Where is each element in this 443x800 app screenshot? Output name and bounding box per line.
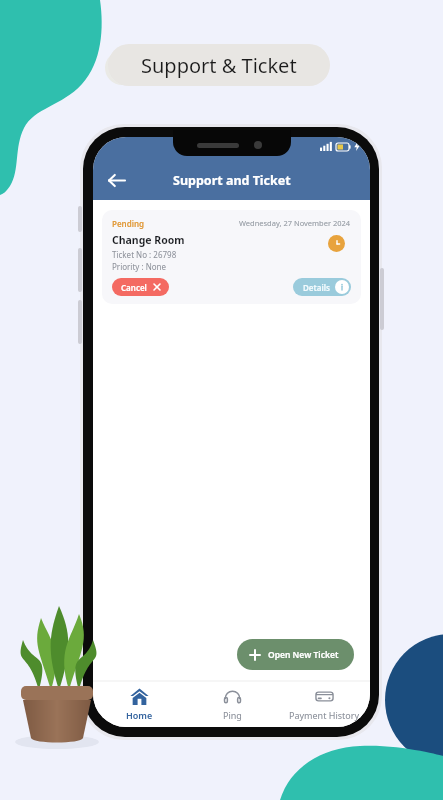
staticText: Ping: [223, 709, 242, 721]
staticText: Priority : None: [112, 261, 167, 272]
staticText: Wednesday, 27 November 2024: [239, 218, 351, 228]
button[interactable]: Cancel: [112, 278, 169, 296]
staticText: Support & Ticket: [141, 52, 297, 79]
button[interactable]: Pending: [102, 210, 361, 304]
staticText: Details: [303, 282, 330, 293]
button[interactable]: Support & Ticket: [108, 44, 330, 86]
staticText: Cancel: [121, 282, 147, 293]
staticText: Pending: [112, 218, 145, 229]
staticText: Open New Ticket: [268, 649, 339, 661]
button[interactable]: Ping: [186, 683, 278, 725]
button[interactable]: Details: [293, 278, 351, 296]
staticText: Support and Ticket: [173, 172, 291, 189]
button[interactable]: Open New Ticket: [237, 639, 354, 670]
staticText: Ticket No : 26798: [112, 249, 177, 260]
button[interactable]: Payment History: [278, 683, 370, 725]
staticText: Payment History: [289, 709, 360, 721]
staticText: Home: [126, 709, 153, 721]
button[interactable]: Home: [93, 683, 185, 725]
staticText: Change Room: [112, 233, 185, 247]
button[interactable]: Back: [99, 163, 133, 197]
